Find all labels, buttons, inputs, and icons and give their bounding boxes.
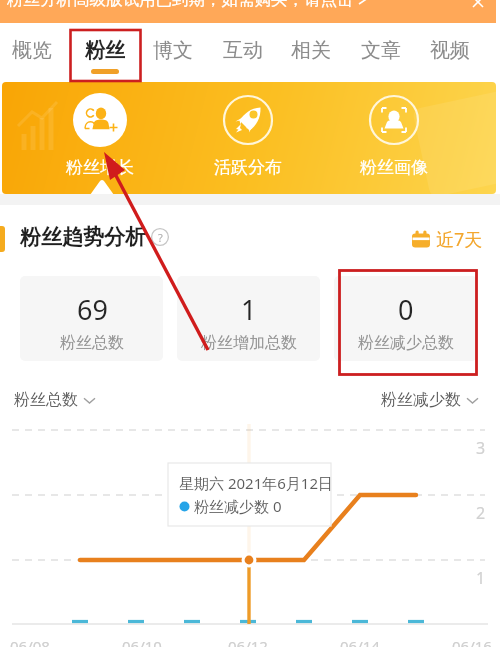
staticText: 文章 [361, 38, 401, 63]
staticText: ? [158, 230, 163, 245]
button[interactable]: 说明 [151, 228, 169, 246]
button[interactable]: 关闭 [468, 0, 488, 12]
button[interactable]: 69 [20, 276, 163, 361]
staticText: 星期六 2021年6月12日 [179, 473, 333, 493]
staticText: 相关 [291, 38, 331, 63]
staticText: 粉丝增长 [66, 157, 134, 178]
staticText: 粉丝增加总数 [201, 333, 297, 353]
button[interactable]: 粉丝画像 [349, 92, 439, 190]
staticText: 粉丝总数 [14, 390, 78, 410]
staticText: 06/12 [228, 636, 268, 647]
staticText: 1 [476, 567, 486, 589]
staticText: 粉丝分析高级版试用已到期，如需购买，请点击 [7, 0, 354, 10]
staticText: 粉丝减少数 [381, 390, 461, 410]
button[interactable]: 粉丝增长 [55, 92, 145, 190]
button[interactable]: 博文 [140, 26, 206, 78]
button[interactable]: 互动 [210, 26, 276, 78]
button[interactable]: 粉丝减少数 [381, 390, 479, 410]
button[interactable]: 活跃分布 [203, 92, 293, 190]
button[interactable]: 视频 [417, 26, 483, 78]
staticText: 粉丝减少数 0 [194, 496, 282, 516]
button[interactable]: 相关 [278, 26, 344, 78]
button[interactable]: 概览 [0, 26, 65, 78]
staticText: 博文 [153, 38, 193, 63]
staticText: 69 [77, 291, 108, 328]
button[interactable]: 1 [177, 276, 320, 361]
button[interactable]: 粉丝总数 [14, 390, 96, 410]
staticText: 互动 [223, 38, 263, 63]
staticText: 粉丝减少总数 [358, 333, 454, 353]
staticText: 06/08 [10, 636, 50, 647]
staticText: 活跃分布 [214, 157, 282, 178]
staticText: 3 [476, 437, 486, 459]
button[interactable]: 粉丝分析高级版试用已到期，如需购买，请点击 [0, 0, 496, 23]
staticText: 1 [241, 291, 257, 328]
staticText: 06/16 [452, 636, 492, 647]
staticText: 粉丝 [85, 38, 125, 63]
button[interactable]: 0 [334, 276, 477, 361]
staticText: 粉丝画像 [360, 157, 428, 178]
button[interactable]: 近7天 [411, 227, 483, 252]
staticText: 视频 [430, 38, 470, 63]
button[interactable]: 粉丝 [72, 26, 138, 78]
staticText: 粉丝总数 [60, 333, 124, 353]
staticText: 06/14 [340, 636, 380, 647]
staticText: 06/10 [122, 636, 162, 647]
staticText: 粉丝趋势分析 [20, 224, 146, 250]
staticText: 概览 [12, 38, 52, 63]
button[interactable]: 文章 [348, 26, 414, 78]
staticText: 0 [398, 291, 414, 328]
staticText: 2 [476, 502, 486, 524]
staticText: 近7天 [436, 227, 483, 252]
